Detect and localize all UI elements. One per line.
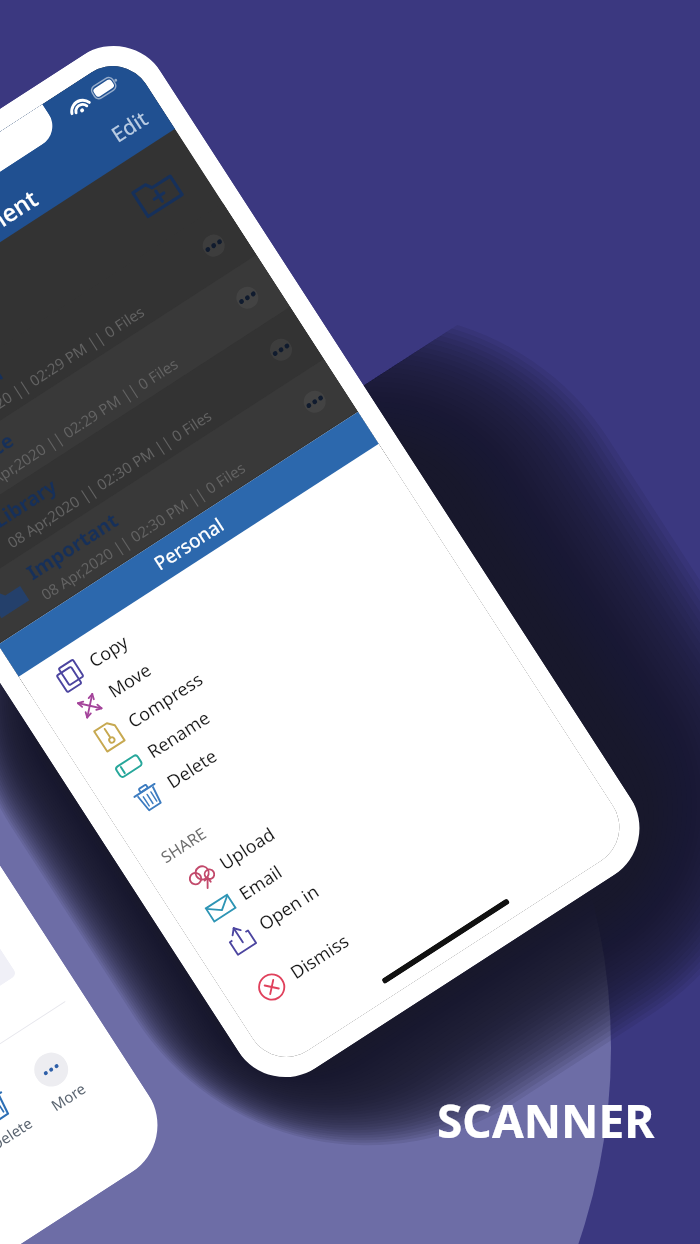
button[interactable]: More options <box>232 282 263 313</box>
button[interactable]: Dismiss <box>225 763 605 1026</box>
button[interactable]: Delete <box>102 572 481 835</box>
staticText: Document <box>0 181 44 274</box>
button[interactable]: Upload <box>154 654 534 917</box>
staticText: Office <box>0 426 19 482</box>
staticText: Compress <box>123 667 208 734</box>
button[interactable]: More options <box>198 230 229 261</box>
button[interactable]: New folder <box>127 163 187 223</box>
staticText: SHARE <box>157 822 210 868</box>
staticText: Edit <box>106 104 153 149</box>
staticText: Delete <box>162 743 222 794</box>
staticText: 08 Apr,2020 || 02:30 PM || 0 Files <box>37 457 249 604</box>
button[interactable]: More <box>13 1037 102 1123</box>
staticText: Delete <box>0 1112 36 1154</box>
staticText: Dismiss <box>285 928 354 985</box>
staticText: More <box>47 1078 90 1115</box>
button[interactable]: More options <box>299 387 330 417</box>
staticText: 08 Apr,2020 || 02:29 PM || 0 Files <box>0 301 148 448</box>
button[interactable]: Important <box>0 359 358 644</box>
staticText: Personal <box>0 360 8 429</box>
button[interactable]: Compress <box>63 512 442 775</box>
staticText: Personal <box>149 512 229 576</box>
button[interactable]: The secret.pdf <box>0 411 391 696</box>
staticText: Upload <box>215 822 279 876</box>
staticText: Copy <box>84 629 133 673</box>
button[interactable]: Library <box>0 307 324 592</box>
button[interactable]: Email <box>174 684 554 947</box>
button[interactable]: More options <box>333 439 364 469</box>
staticText: 08 Apr,2020 || 02:30 PM || 0 Files <box>3 405 216 552</box>
button[interactable]: Move <box>43 481 423 745</box>
button[interactable]: Edit <box>106 104 153 149</box>
button[interactable]: Copy <box>23 451 403 714</box>
button[interactable]: Rename <box>82 542 462 805</box>
staticText: The secret.pdf <box>55 538 189 638</box>
staticText: Rename <box>142 705 215 764</box>
staticText: Email <box>234 859 287 906</box>
button[interactable]: More options <box>266 334 296 365</box>
staticText: 08 Apr,2020 || 02:29 PM || 0 Files <box>0 353 182 500</box>
button[interactable]: Delete <box>0 1074 45 1160</box>
staticText: 08 Apr,2020 || 1 File <box>71 562 202 656</box>
staticText: SCANNER <box>437 1089 655 1152</box>
staticText: Move <box>103 657 156 704</box>
button[interactable]: Office <box>0 255 290 540</box>
staticText: Important <box>21 507 123 586</box>
button[interactable]: Personal <box>0 203 257 488</box>
staticText: Library <box>0 472 62 534</box>
button[interactable]: Open in <box>193 714 573 977</box>
staticText: Open in <box>254 879 324 936</box>
